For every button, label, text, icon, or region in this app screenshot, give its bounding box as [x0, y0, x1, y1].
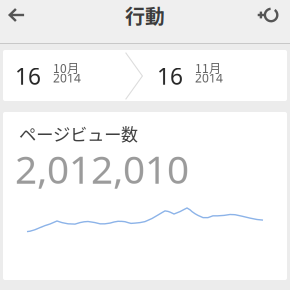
button[interactable]: Add: [250, 0, 286, 30]
staticText: 2014: [53, 70, 81, 86]
button[interactable]: 行動: [105, 0, 185, 30]
staticText: ページビュー数: [19, 121, 138, 146]
staticText: 11月: [195, 59, 221, 76]
staticText: 10月: [53, 59, 79, 76]
staticText: 2014: [195, 70, 223, 86]
staticText: 16: [157, 61, 183, 91]
staticText: 行動: [125, 0, 165, 29]
staticText: 16: [15, 61, 41, 91]
button[interactable]: Back: [0, 0, 35, 30]
staticText: 2,012,010: [15, 143, 189, 194]
